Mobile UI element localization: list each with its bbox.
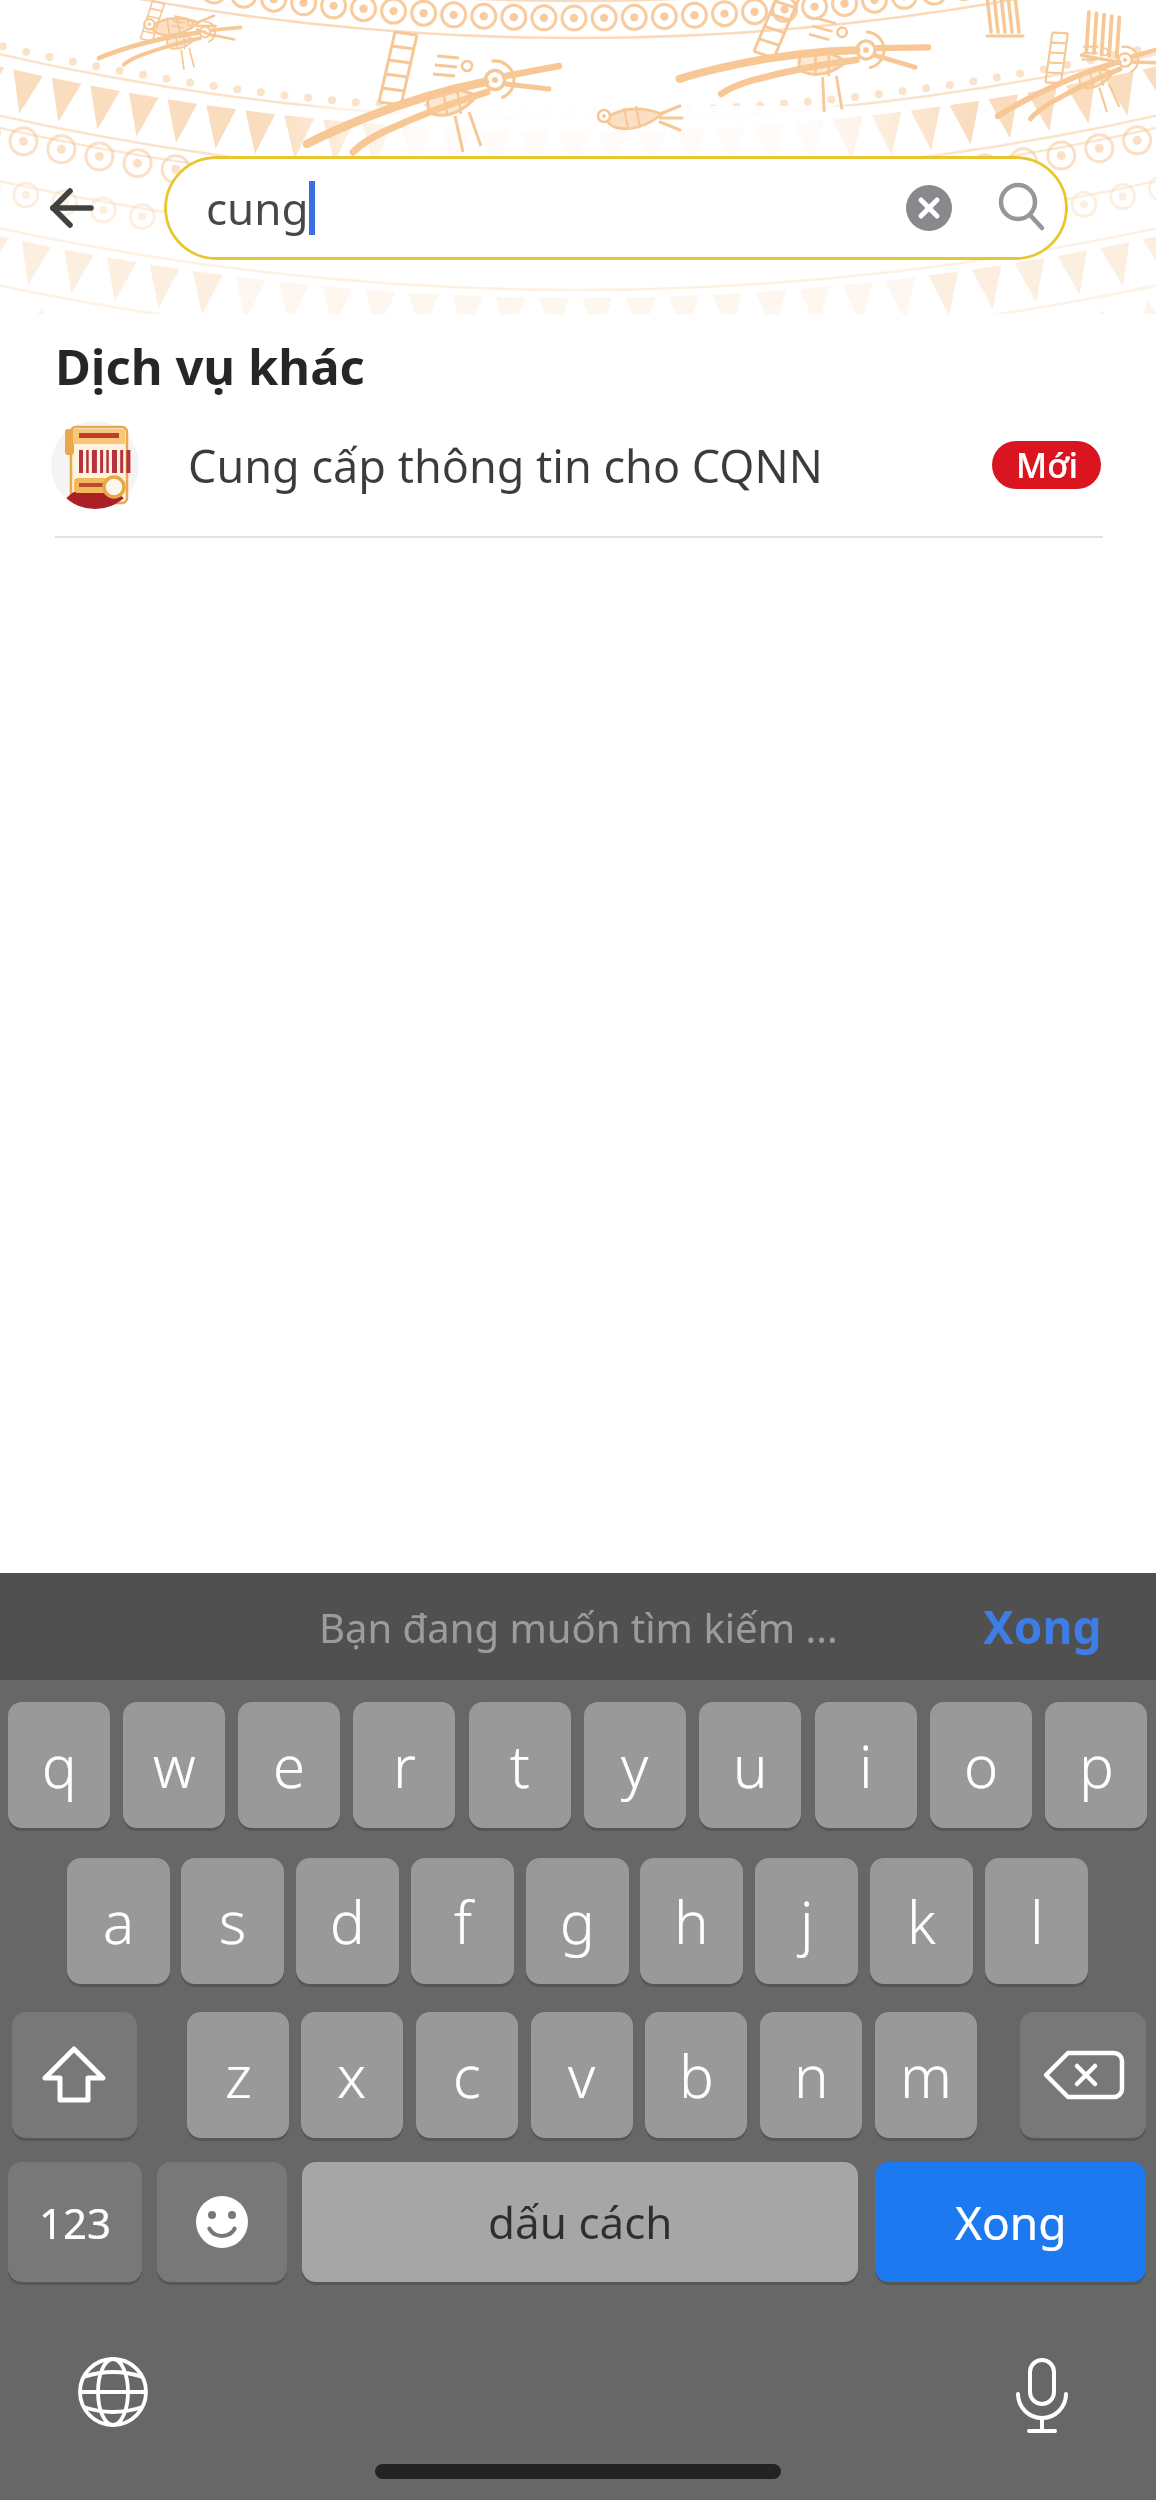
button[interactable]: x xyxy=(301,2012,403,2138)
staticText: n xyxy=(794,2036,829,2115)
button[interactable]: i xyxy=(815,1702,917,1828)
button[interactable]: p xyxy=(1045,1702,1147,1828)
staticText: p xyxy=(1079,1726,1114,1805)
staticText: j xyxy=(800,1882,814,1961)
button[interactable]: l xyxy=(985,1858,1088,1984)
staticText: Dịch vụ khác xyxy=(55,333,365,400)
button[interactable] xyxy=(906,185,952,231)
button[interactable]: o xyxy=(930,1702,1032,1828)
button[interactable]: cung xyxy=(164,156,1068,260)
button[interactable]: g xyxy=(526,1858,629,1984)
button[interactable]: Xong xyxy=(875,2162,1146,2282)
staticText: o xyxy=(964,1726,999,1805)
button[interactable] xyxy=(1004,2348,1080,2436)
staticText: i xyxy=(859,1726,873,1805)
button[interactable]: f xyxy=(411,1858,514,1984)
staticText: m xyxy=(900,2036,952,2115)
staticText: Cung cấp thông tin cho CQNN xyxy=(188,435,823,496)
staticText: Mới xyxy=(1016,442,1078,488)
staticText: g xyxy=(560,1882,595,1961)
staticText: e xyxy=(273,1726,306,1805)
button[interactable]: z xyxy=(187,2012,289,2138)
button[interactable]: e xyxy=(238,1702,340,1828)
button[interactable]: k xyxy=(870,1858,973,1984)
button[interactable]: j xyxy=(755,1858,858,1984)
button[interactable] xyxy=(1020,2012,1146,2138)
staticText: t xyxy=(510,1726,530,1805)
button[interactable]: w xyxy=(123,1702,225,1828)
button[interactable]: s xyxy=(181,1858,284,1984)
button[interactable]: Cung cấp thông tin cho CQNN xyxy=(0,415,1156,515)
staticText: r xyxy=(393,1726,416,1805)
staticText: q xyxy=(42,1726,77,1805)
staticText: dấu cách xyxy=(488,2192,673,2252)
staticText: d xyxy=(330,1882,365,1961)
button[interactable]: a xyxy=(67,1858,170,1984)
staticText: z xyxy=(225,2036,252,2115)
button[interactable]: y xyxy=(584,1702,686,1828)
staticText: Bạn đang muốn tìm kiếm ... xyxy=(319,1600,838,1654)
button[interactable]: dấu cách xyxy=(302,2162,858,2282)
button[interactable]: b xyxy=(645,2012,747,2138)
button[interactable] xyxy=(44,182,98,234)
staticText: y xyxy=(621,1726,649,1805)
staticText: Xong xyxy=(955,2191,1067,2254)
staticText: w xyxy=(153,1726,196,1805)
button[interactable]: v xyxy=(531,2012,633,2138)
staticText: cung xyxy=(206,178,309,238)
staticText: u xyxy=(733,1726,768,1805)
button[interactable] xyxy=(75,2354,151,2430)
button[interactable]: c xyxy=(416,2012,518,2138)
staticText: s xyxy=(219,1882,247,1961)
button[interactable]: d xyxy=(296,1858,399,1984)
staticText: f xyxy=(454,1882,472,1961)
button[interactable]: t xyxy=(469,1702,571,1828)
staticText: a xyxy=(103,1882,135,1961)
staticText: c xyxy=(453,2036,481,2115)
button[interactable]: Xong xyxy=(983,1595,1102,1658)
button[interactable]: n xyxy=(760,2012,862,2138)
staticText: k xyxy=(907,1882,936,1961)
button[interactable]: r xyxy=(353,1702,455,1828)
button[interactable] xyxy=(12,2012,137,2138)
button[interactable]: u xyxy=(699,1702,801,1828)
button[interactable]: q xyxy=(8,1702,110,1828)
button[interactable]: 123 xyxy=(8,2162,142,2282)
button[interactable]: h xyxy=(640,1858,743,1984)
staticText: v xyxy=(568,2036,596,2115)
staticText: b xyxy=(679,2036,714,2115)
staticText: 123 xyxy=(39,2194,112,2251)
button[interactable] xyxy=(157,2162,287,2282)
staticText: x xyxy=(337,2036,367,2115)
staticText: h xyxy=(674,1882,709,1961)
staticText: l xyxy=(1030,1882,1044,1961)
button[interactable]: m xyxy=(875,2012,977,2138)
